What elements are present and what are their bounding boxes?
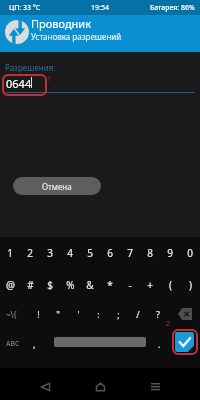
button[interactable]: ,: [26, 329, 42, 359]
button[interactable]: ~\{: [0, 301, 22, 327]
staticText: ABC: [6, 339, 20, 349]
staticText: $: [47, 278, 53, 292]
button[interactable]: #: [20, 272, 40, 298]
staticText: ЦП: 33 °C: [9, 3, 41, 13]
button[interactable]: (: [160, 272, 180, 298]
button[interactable]: ?: [148, 301, 168, 327]
staticText: ?: [156, 308, 160, 320]
staticText: /: [136, 308, 140, 320]
staticText: ': [77, 308, 80, 320]
button[interactable]: ;: [108, 301, 128, 327]
button[interactable]: /: [128, 301, 148, 327]
staticText: @: [6, 278, 15, 292]
button[interactable]: 6: [100, 240, 120, 266]
staticText: Разрешения:: [5, 62, 56, 73]
staticText: 19:54: [91, 3, 109, 13]
button[interactable]: $: [40, 272, 60, 298]
staticText: 8: [147, 246, 153, 260]
staticText: #: [27, 278, 34, 292]
staticText: 1: [47, 74, 52, 84]
staticText: &: [86, 278, 94, 292]
staticText: Отмена: [42, 181, 72, 192]
staticText: ~\{: [6, 309, 17, 320]
staticText: 0644: [6, 76, 32, 91]
button[interactable]: Backspace: [172, 301, 198, 327]
staticText: -: [128, 278, 132, 292]
button[interactable]: Отмена: [13, 177, 101, 195]
staticText: 0: [187, 246, 193, 260]
staticText: 6: [107, 246, 113, 260]
staticText: !: [37, 308, 40, 320]
button[interactable]: Back: [30, 368, 60, 400]
staticText: 1: [7, 246, 13, 260]
button[interactable]: %: [60, 272, 80, 298]
staticText: 7: [127, 246, 133, 260]
button[interactable]: 4: [60, 240, 80, 266]
button[interactable]: !: [28, 301, 48, 327]
button[interactable]: Home: [85, 368, 115, 400]
button[interactable]: 9: [160, 240, 180, 266]
staticText: Батарея: 86%: [150, 3, 195, 13]
button[interactable]: Recents: [140, 368, 170, 400]
staticText: 4: [67, 246, 73, 260]
staticText: 3: [47, 246, 53, 260]
button[interactable]: 7: [120, 240, 140, 266]
button[interactable]: +: [140, 272, 160, 298]
button[interactable]: ": [48, 301, 68, 327]
button[interactable]: @: [0, 272, 20, 298]
staticText: ): [189, 278, 192, 292]
button[interactable]: -: [120, 272, 140, 298]
button[interactable]: ): [180, 272, 200, 298]
staticText: ;: [117, 308, 120, 320]
staticText: Проводник: [31, 16, 92, 31]
button[interactable]: Space: [54, 337, 146, 347]
staticText: 5: [87, 246, 93, 260]
staticText: *: [107, 278, 113, 292]
button[interactable]: 8: [140, 240, 160, 266]
button[interactable]: Enter: [175, 332, 194, 352]
staticText: %: [66, 278, 75, 292]
staticText: 9: [167, 246, 173, 260]
staticText: ,: [33, 338, 36, 350]
staticText: :: [97, 308, 100, 320]
button[interactable]: 0: [180, 240, 200, 266]
button[interactable]: :: [88, 301, 108, 327]
button[interactable]: 5: [80, 240, 100, 266]
button[interactable]: 1: [0, 240, 20, 266]
other: App icon: [5, 20, 29, 44]
button[interactable]: .: [150, 329, 168, 359]
staticText: +: [147, 278, 153, 292]
staticText: 2: [166, 319, 171, 329]
staticText: .: [158, 338, 161, 350]
button[interactable]: *: [100, 272, 120, 298]
staticText: 2: [27, 246, 33, 260]
staticText: ": [56, 308, 60, 320]
staticText: Установка разрешений: [31, 31, 122, 42]
button[interactable]: ABC: [0, 329, 26, 359]
button[interactable]: 3: [40, 240, 60, 266]
button[interactable]: 2: [20, 240, 40, 266]
staticText: (: [169, 278, 172, 292]
button[interactable]: &: [80, 272, 100, 298]
button[interactable]: ': [68, 301, 88, 327]
